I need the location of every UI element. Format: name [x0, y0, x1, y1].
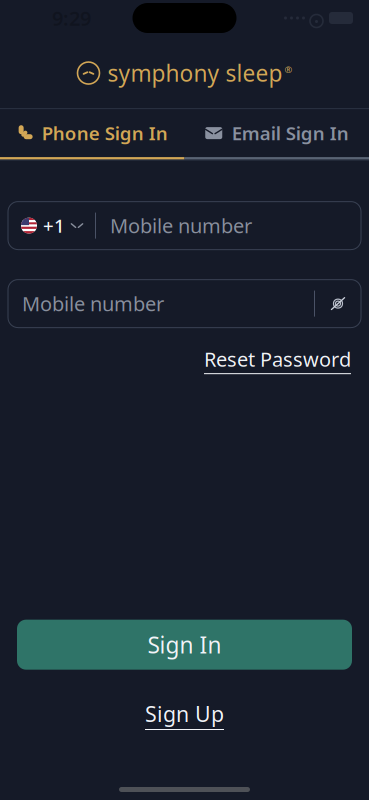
button[interactable]: Reset Password [204, 346, 351, 374]
button[interactable]: Email Sign In [184, 109, 369, 157]
staticText: +1 [43, 213, 65, 238]
staticText: symphony sleep [107, 58, 282, 88]
staticText: Email Sign In [232, 121, 349, 145]
staticText: Mobile number [22, 290, 164, 317]
button[interactable]: Sign In [17, 620, 352, 670]
button[interactable]: Mobile number [8, 280, 361, 328]
staticText: ® [284, 63, 292, 76]
staticText: 9:29 [52, 5, 91, 31]
staticText: Phone Sign In [42, 121, 168, 145]
staticText: Reset Password [204, 346, 351, 372]
staticText: Sign Up [145, 700, 224, 728]
staticText: Sign In [147, 630, 221, 660]
button[interactable]: +1 [8, 202, 361, 250]
button[interactable]: Phone Sign In [0, 109, 184, 157]
staticText: Mobile number [110, 212, 252, 239]
button[interactable]: Sign Up [145, 700, 224, 730]
